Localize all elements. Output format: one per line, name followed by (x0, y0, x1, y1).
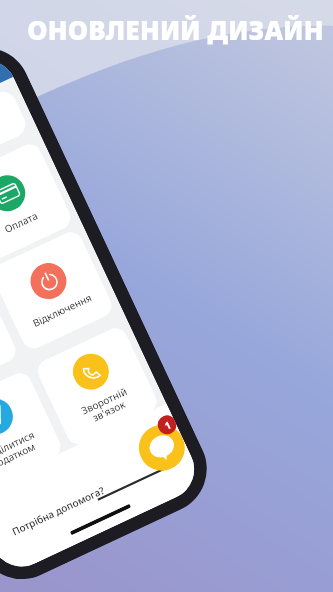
staticText: Оплата (2, 208, 40, 236)
button[interactable]: Оплата (0, 140, 75, 265)
button[interactable]: Відключення (0, 228, 116, 353)
button[interactable]: Показники (0, 273, 20, 398)
button[interactable]: Потрібна допомога? (9, 483, 107, 538)
staticText: Відключення (30, 290, 94, 330)
button[interactable]: Chat support (131, 417, 192, 478)
staticText: ОНОВЛЕНИЙ ДИЗАЙН (14, 12, 333, 48)
staticText: Поділитися додатком (0, 427, 41, 474)
button[interactable]: Поділитися додатком (0, 369, 65, 494)
staticText: 1 (162, 417, 173, 433)
button[interactable]: Додати адресу (0, 87, 30, 216)
staticText: Зворотній зв'язок (79, 384, 134, 427)
button[interactable]: Зворотній зв'язок (34, 324, 161, 449)
